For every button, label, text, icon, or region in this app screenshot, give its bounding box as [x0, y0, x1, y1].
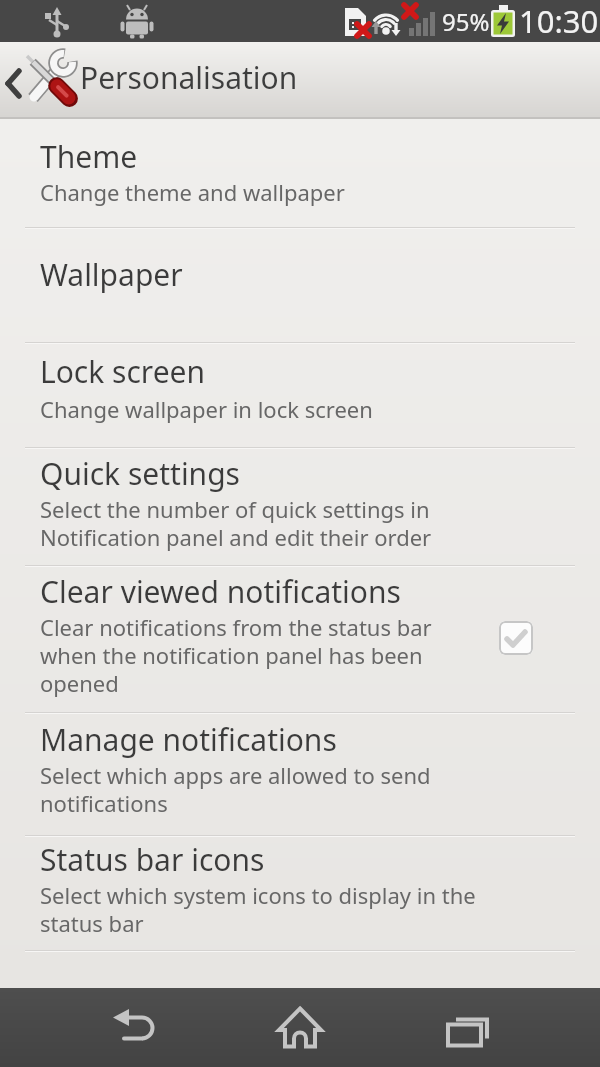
staticText: Status bar icons [40, 839, 265, 880]
button[interactable]: Wallpaper [0, 229, 600, 342]
button[interactable]: Theme [0, 119, 600, 227]
staticText: Select which system icons to display in … [40, 880, 476, 938]
staticText: Change wallpaper in lock screen [40, 394, 373, 424]
staticText: Clear notifications from the status bar … [40, 612, 432, 698]
button[interactable]: Personalisation [0, 42, 600, 119]
staticText: Clear viewed notifications [40, 571, 401, 612]
button[interactable]: Manage notifications [0, 714, 600, 835]
staticText: 10:30 [519, 0, 599, 42]
button[interactable] [499, 621, 533, 655]
staticText: Personalisation [80, 57, 298, 98]
staticText: Select the number of quick settings in N… [40, 494, 432, 552]
staticText: Wallpaper [40, 254, 183, 295]
staticText: Lock screen [40, 351, 206, 392]
staticText: 95% [442, 5, 490, 38]
button[interactable]: Clear viewed notifications [0, 567, 600, 712]
button[interactable] [400, 988, 600, 1067]
button[interactable]: Lock screen [0, 344, 600, 447]
staticText: Select which apps are allowed to send no… [40, 760, 431, 818]
staticText: Quick settings [40, 453, 240, 494]
staticText: Change theme and wallpaper [40, 177, 345, 207]
button[interactable]: Status bar icons [0, 837, 600, 950]
button[interactable] [200, 988, 400, 1067]
staticText: Theme [40, 136, 138, 177]
staticText: Manage notifications [40, 719, 337, 760]
button[interactable]: Quick settings [0, 449, 600, 565]
button[interactable] [0, 988, 200, 1067]
